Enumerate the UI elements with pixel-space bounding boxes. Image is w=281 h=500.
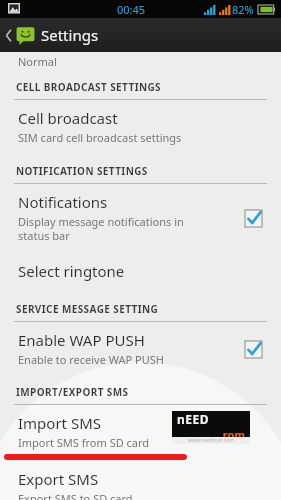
staticText: Import SMS from SD card bbox=[18, 435, 150, 450]
staticText: Cell broadcast bbox=[18, 108, 118, 128]
button[interactable]: Notifications bbox=[241, 206, 265, 230]
staticText: www.needrom.com bbox=[188, 437, 234, 444]
button[interactable]: Enable WAP PUSH bbox=[241, 337, 265, 361]
staticText: Enable to receive WAP PUSH bbox=[18, 352, 164, 367]
button[interactable]: Select ringtone bbox=[0, 251, 281, 293]
staticText: Select ringtone bbox=[18, 261, 125, 281]
staticText: Notifications bbox=[18, 192, 108, 212]
staticText: SERVICE MESSAGE SETTING bbox=[16, 302, 159, 316]
staticText: nEED bbox=[177, 411, 210, 427]
staticText: 00:45 bbox=[117, 2, 146, 17]
staticText: Export SMS to SD card bbox=[18, 491, 133, 500]
button[interactable]: Cell broadcast bbox=[0, 100, 281, 155]
button[interactable]: Enable WAP PUSH bbox=[0, 322, 281, 376]
staticText: 82% bbox=[232, 2, 254, 17]
staticText: Display message notifications in status … bbox=[18, 214, 184, 243]
staticText: Export SMS bbox=[18, 469, 99, 489]
button[interactable]: Import SMS bbox=[0, 405, 281, 452]
staticText: SIM card cell broadcast settings bbox=[18, 130, 182, 145]
button[interactable]: Up bbox=[0, 22, 41, 49]
staticText: rom bbox=[177, 427, 245, 437]
staticText: NOTIFICATION SETTINGS bbox=[16, 164, 148, 178]
staticText: CELL BROADCAST SETTINGS bbox=[16, 80, 161, 94]
staticText: Normal bbox=[18, 54, 57, 69]
button[interactable]: Notifications bbox=[0, 184, 281, 251]
staticText: Enable WAP PUSH bbox=[18, 330, 145, 350]
staticText: Settings bbox=[41, 25, 99, 45]
staticText: IMPORT/EXPORT SMS bbox=[16, 385, 129, 399]
button[interactable]: Export SMS bbox=[0, 469, 281, 500]
staticText: Import SMS bbox=[18, 413, 101, 433]
